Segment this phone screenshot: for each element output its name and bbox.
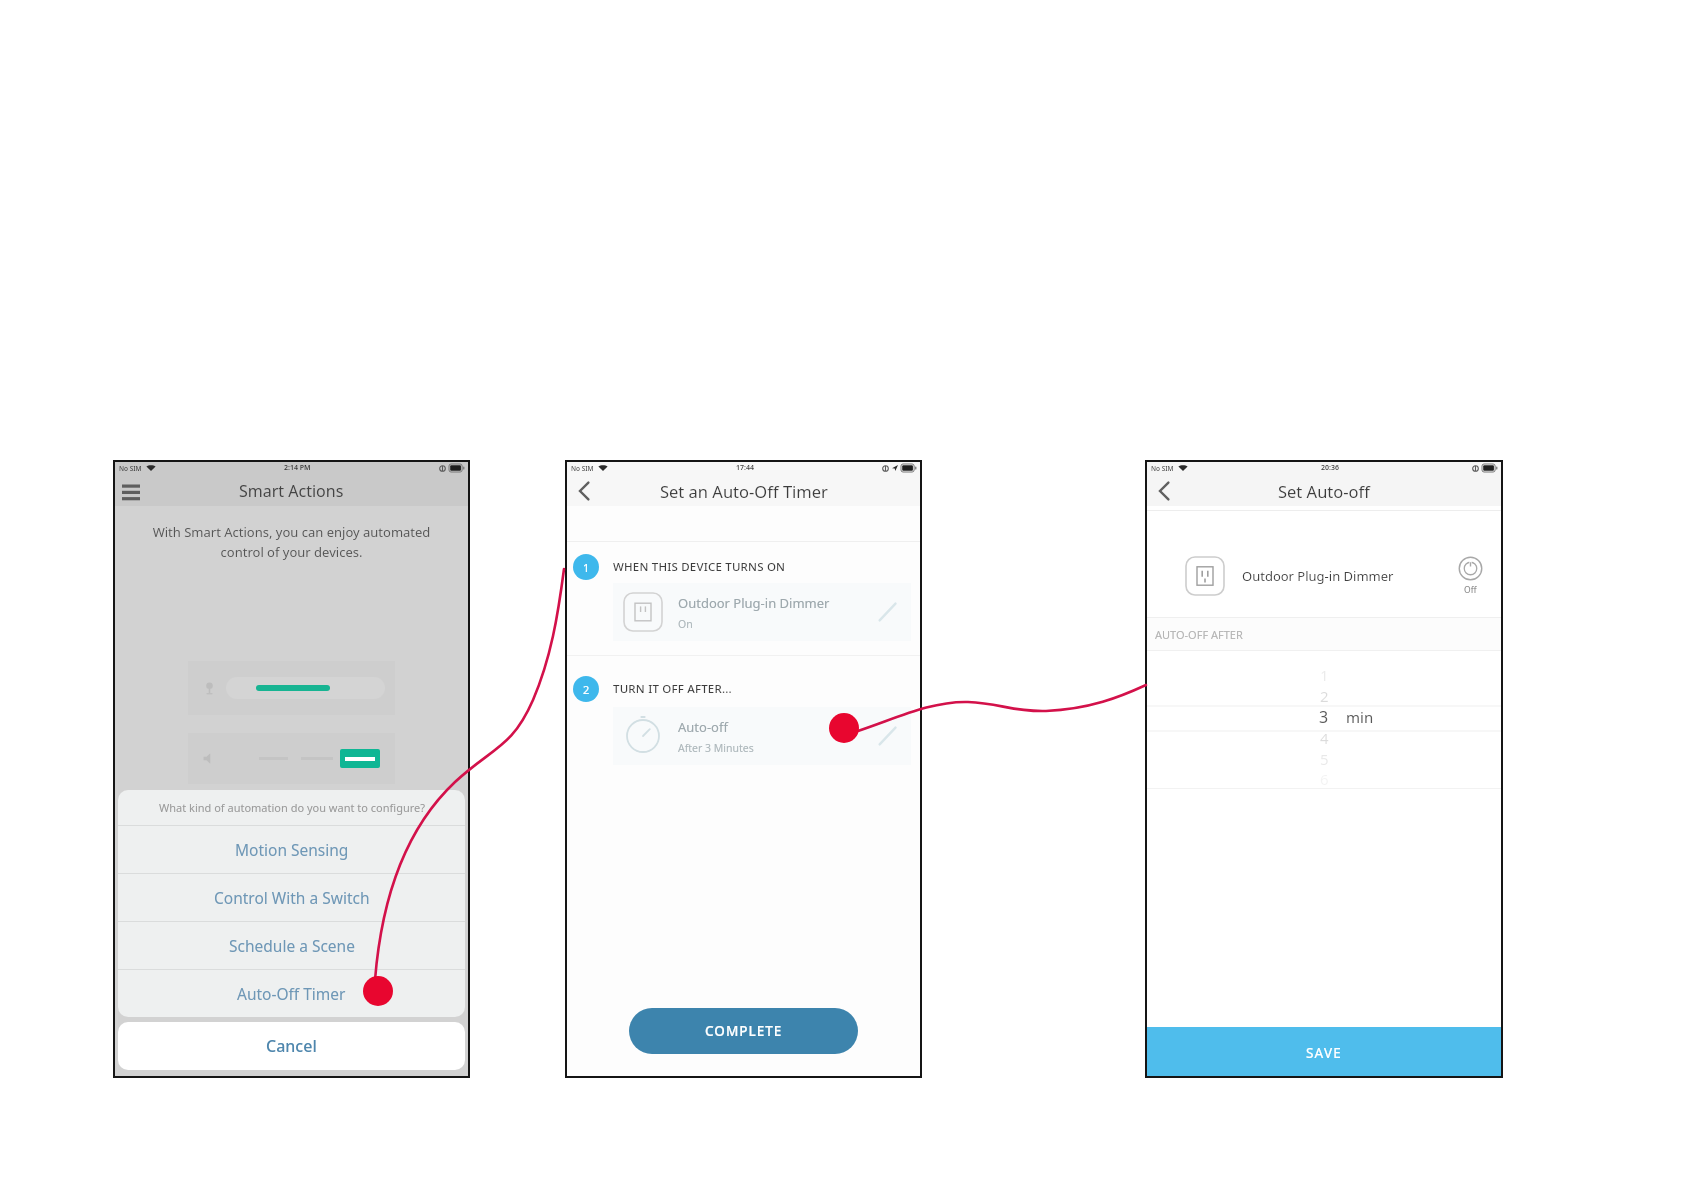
staticText: 1 bbox=[1320, 665, 1329, 685]
button[interactable]: Cancel bbox=[118, 1022, 465, 1070]
staticText: Cancel bbox=[266, 1035, 317, 1057]
staticText: No SIM bbox=[119, 464, 142, 473]
staticText: COMPLETE bbox=[705, 1022, 783, 1040]
button[interactable]: Edit bbox=[877, 725, 899, 747]
staticText: 3 bbox=[1319, 706, 1329, 727]
button[interactable]: Schedule a Scene bbox=[118, 922, 465, 969]
staticText: SAVE bbox=[1306, 1044, 1342, 1062]
staticText: Smart Actions bbox=[239, 480, 344, 502]
staticText: Off bbox=[1464, 584, 1477, 596]
button[interactable]: Outdoor Plug-in Dimmer bbox=[613, 583, 911, 641]
staticText: Set Auto-off bbox=[1278, 480, 1370, 502]
staticText: AUTO-OFF AFTER bbox=[1155, 627, 1243, 642]
button[interactable]: Auto-Off Timer bbox=[118, 970, 465, 1017]
staticText: 2 bbox=[1320, 686, 1329, 706]
staticText: On bbox=[678, 617, 693, 631]
staticText: Outdoor Plug-in Dimmer bbox=[678, 594, 830, 612]
button[interactable]: Edit bbox=[877, 601, 899, 623]
staticText: min bbox=[1346, 707, 1374, 727]
staticText: Set an Auto-Off Timer bbox=[660, 480, 828, 502]
staticText: No SIM bbox=[1151, 464, 1174, 473]
button[interactable]: Control With a Switch bbox=[118, 874, 465, 921]
staticText: 20:36 bbox=[1321, 463, 1339, 473]
button[interactable]: Back bbox=[574, 480, 594, 502]
button[interactable]: Back bbox=[1154, 480, 1174, 502]
staticText: After 3 Minutes bbox=[678, 741, 754, 755]
staticText: TURN IT OFF AFTER... bbox=[613, 681, 732, 697]
button[interactable]: Motion Sensing bbox=[118, 826, 465, 873]
button[interactable]: SAVE bbox=[1145, 1027, 1503, 1078]
button[interactable]: Power bbox=[1458, 556, 1483, 596]
staticText: Control With a Switch bbox=[214, 887, 370, 908]
staticText: No SIM bbox=[571, 464, 594, 473]
staticText: Auto-Off Timer bbox=[237, 983, 346, 1004]
staticText: 1 bbox=[583, 560, 590, 575]
staticText: WHEN THIS DEVICE TURNS ON bbox=[613, 559, 786, 575]
staticText: Motion Sensing bbox=[235, 839, 349, 860]
staticText: What kind of automation do you want to c… bbox=[159, 800, 425, 815]
staticText: 2 bbox=[583, 682, 590, 697]
button[interactable]: Auto-off bbox=[613, 707, 911, 765]
staticText: Auto-off bbox=[678, 718, 728, 736]
staticText: 4 bbox=[1320, 728, 1329, 748]
staticText: Outdoor Plug-in Dimmer bbox=[1242, 567, 1394, 585]
staticText: 2:14 PM bbox=[284, 463, 311, 473]
staticText: Schedule a Scene bbox=[229, 935, 355, 956]
staticText: 5 bbox=[1320, 749, 1329, 769]
staticText: 17:44 bbox=[736, 463, 754, 473]
button[interactable]: Menu bbox=[122, 482, 140, 500]
staticText: With Smart Actions, you can enjoy automa… bbox=[121, 523, 462, 561]
button[interactable]: COMPLETE bbox=[629, 1008, 858, 1054]
staticText: 6 bbox=[1320, 769, 1329, 788]
